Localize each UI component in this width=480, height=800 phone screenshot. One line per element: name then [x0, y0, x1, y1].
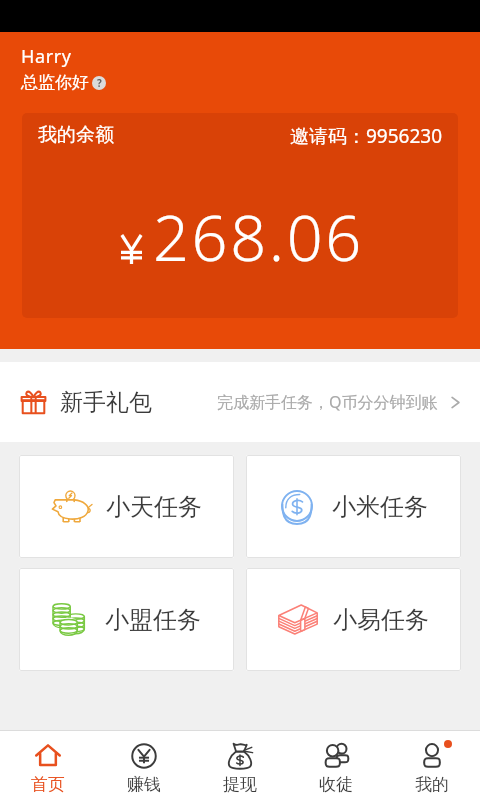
staticText: 赚钱 — [127, 774, 161, 795]
staticText: 邀请码：9956230 — [290, 123, 443, 149]
staticText: 小盟任务 — [105, 605, 201, 635]
button[interactable]: 提现 — [192, 731, 288, 800]
button[interactable]: 小易任务 — [246, 568, 461, 671]
button[interactable]: 小米任务 — [246, 455, 461, 558]
staticText: ? — [97, 76, 102, 90]
button[interactable]: 新手礼包 — [0, 362, 480, 442]
staticText: 提现 — [223, 774, 257, 795]
staticText: 首页 — [31, 774, 65, 795]
button[interactable]: 首页 — [0, 731, 96, 800]
staticText: 新手礼包 — [60, 388, 152, 417]
button[interactable]: 小盟任务 — [19, 568, 234, 671]
staticText: 小天任务 — [106, 492, 202, 522]
staticText: 收徒 — [319, 774, 353, 795]
staticText: 小易任务 — [333, 605, 429, 635]
button[interactable]: 我的 — [384, 731, 480, 800]
staticText: 268.06 — [153, 194, 364, 280]
button[interactable]: 赚钱 — [96, 731, 192, 800]
staticText: 我的 — [415, 774, 449, 795]
button[interactable]: 小天任务 — [19, 455, 234, 558]
staticText: 总监你好 — [21, 72, 89, 93]
staticText: 完成新手任务，Q币分分钟到账 — [217, 391, 438, 413]
staticText: Harry — [21, 44, 72, 69]
button[interactable]: 收徒 — [288, 731, 384, 800]
staticText: 小米任务 — [332, 492, 428, 522]
staticText: 我的余额 — [38, 123, 114, 147]
